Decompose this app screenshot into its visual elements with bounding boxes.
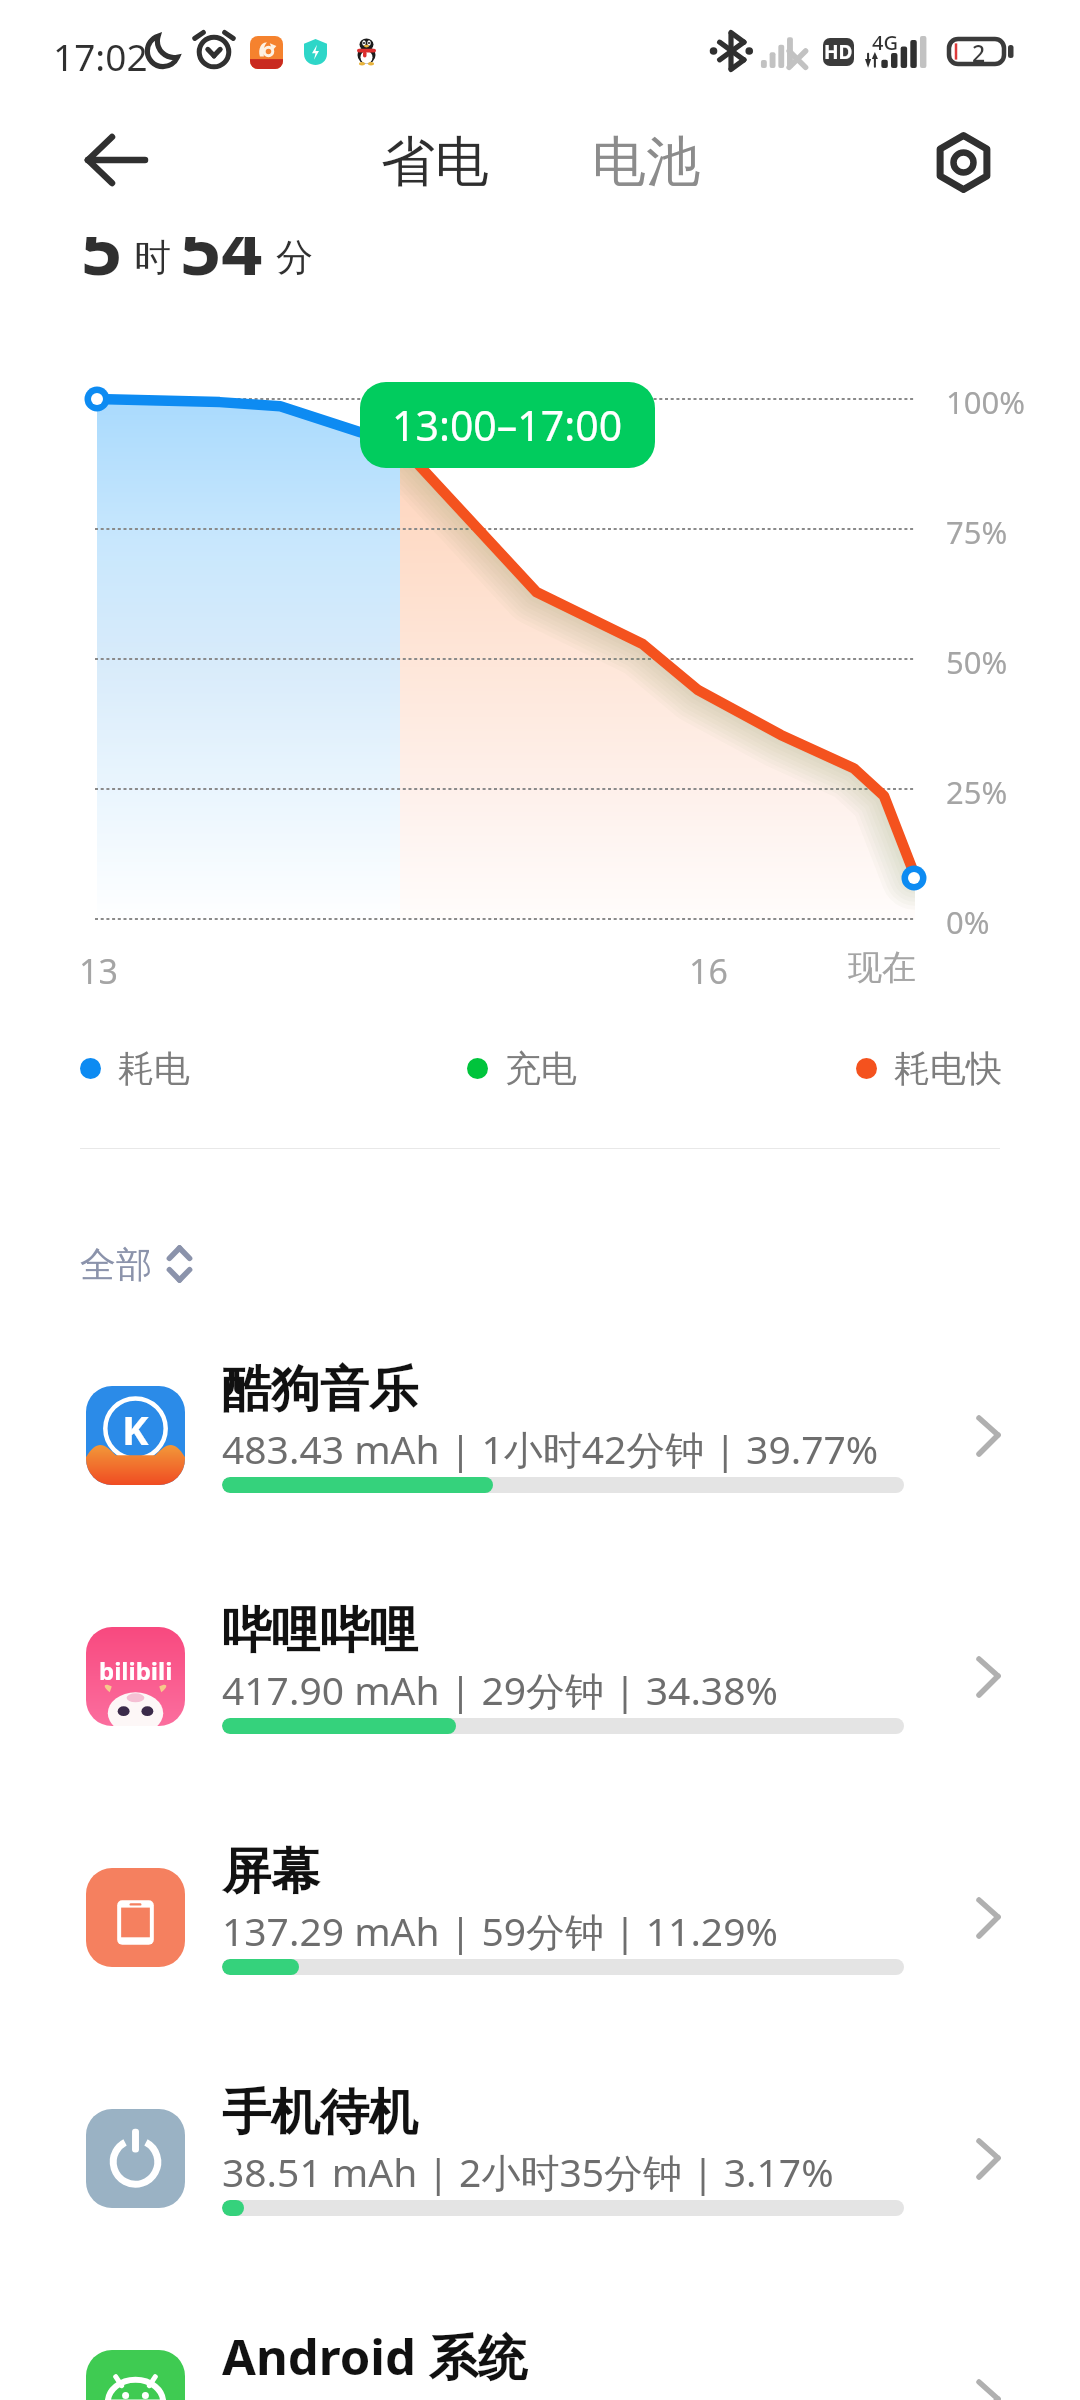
button[interactable]: Android 系统 — [0, 2322, 1080, 2400]
staticText: 50% — [946, 641, 1008, 683]
staticText: 75% — [946, 511, 1008, 553]
button[interactable]: Back — [66, 118, 156, 208]
staticText: 13 — [79, 948, 118, 994]
staticText: 耗电 — [118, 1046, 190, 1091]
button[interactable]: 全部 — [80, 1242, 191, 1286]
staticText: 4G — [872, 29, 898, 56]
staticText: 分 — [276, 237, 313, 279]
staticText: 17:02 — [53, 31, 148, 81]
staticText: 哔哩哔哩 — [222, 1600, 418, 1662]
staticText: 时 — [134, 237, 171, 279]
staticText: 2 — [972, 37, 986, 66]
button[interactable]: K — [0, 1358, 1080, 1558]
button[interactable]: 屏幕 — [0, 1840, 1080, 2040]
staticText: 5 — [81, 237, 123, 279]
staticText: 现在 — [848, 946, 916, 989]
button[interactable]: 手机待机 — [0, 2081, 1080, 2281]
staticText: 屏幕 — [222, 1841, 320, 1903]
staticText: 充电 — [505, 1046, 577, 1091]
button[interactable]: bilibili — [0, 1599, 1080, 1799]
staticText: 137.29 mAh | 59分钟 | 11.29% — [222, 1904, 778, 1957]
staticText: Android 系统 — [222, 2323, 527, 2390]
button[interactable]: 充电 — [467, 1045, 577, 1091]
button[interactable]: 耗电快 — [856, 1045, 1002, 1091]
staticText: 38.51 mAh | 2小时35分钟 | 3.17% — [222, 2145, 834, 2198]
staticText: 417.90 mAh | 29分钟 | 34.38% — [222, 1663, 778, 1716]
staticText: HD — [824, 39, 853, 65]
staticText: 100% — [946, 381, 1025, 423]
button[interactable]: 省电 — [381, 128, 489, 196]
staticText: 13:00–17:00 — [392, 397, 623, 453]
staticText: 16 — [689, 948, 728, 994]
button[interactable]: 电池 — [592, 128, 700, 196]
staticText: K — [122, 1402, 149, 1456]
staticText: 全部 — [80, 1242, 152, 1286]
button[interactable]: 耗电 — [80, 1045, 190, 1091]
staticText: bilibili — [99, 1654, 173, 1687]
button[interactable]: 13:00–17:00 — [360, 382, 655, 468]
staticText: 手机待机 — [222, 2082, 418, 2144]
staticText: 耗电快 — [894, 1046, 1002, 1091]
staticText: 54 — [180, 237, 263, 279]
staticText: 483.43 mAh | 1小时42分钟 | 39.77% — [222, 1422, 879, 1475]
staticText: 0% — [946, 901, 990, 943]
staticText: 25% — [946, 771, 1008, 813]
staticText: 酷狗音乐 — [222, 1359, 418, 1421]
button[interactable]: Settings — [920, 119, 1008, 207]
